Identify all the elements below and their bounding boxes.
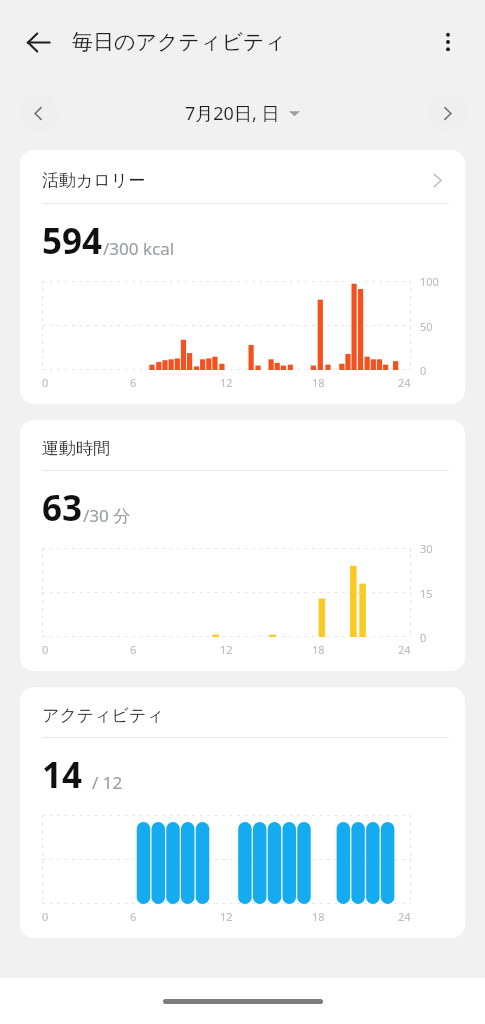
staticText: 0 (420, 630, 427, 645)
staticText: 18 (312, 909, 325, 924)
staticText: 15 (420, 586, 433, 601)
staticText: 活動カロリー (42, 170, 425, 191)
button[interactable]: 7月20日, 日 (179, 97, 306, 130)
staticText: 12 (220, 642, 233, 657)
staticText: 0 (42, 375, 49, 390)
staticText: 50 (420, 319, 433, 334)
staticText: 100 (420, 274, 439, 289)
staticText: 30 (420, 541, 433, 556)
button[interactable]: 運動時間 (20, 420, 465, 671)
staticText: 毎日のアクティビティ (72, 29, 286, 55)
button[interactable]: Previous day (18, 93, 58, 133)
staticText: / 12 (92, 771, 123, 794)
staticText: 0 (42, 909, 49, 924)
staticText: 63 (42, 484, 83, 532)
button[interactable]: Back (14, 18, 62, 66)
staticText: 18 (312, 375, 325, 390)
staticText: 14 (42, 751, 83, 799)
button[interactable]: Next day (427, 93, 467, 133)
staticText: /300 kcal (103, 237, 175, 260)
staticText: 24 (398, 642, 411, 657)
staticText: 6 (130, 642, 137, 657)
staticText: 0 (42, 642, 49, 657)
staticText: 12 (220, 909, 233, 924)
button[interactable]: アクティビティ (20, 687, 465, 938)
staticText: アクティビティ (42, 705, 449, 726)
staticText: 7月20日, 日 (185, 101, 280, 126)
staticText: 運動時間 (42, 438, 449, 459)
staticText: 0 (420, 363, 427, 378)
staticText: 24 (398, 375, 411, 390)
button[interactable]: Details (425, 168, 449, 192)
staticText: 24 (398, 909, 411, 924)
staticText: /30 分 (83, 504, 131, 527)
staticText: 18 (312, 642, 325, 657)
staticText: 6 (130, 909, 137, 924)
staticText: 594 (42, 217, 103, 265)
button[interactable]: More options (424, 18, 472, 66)
button[interactable]: 活動カロリー (20, 150, 465, 404)
staticText: 12 (220, 375, 233, 390)
staticText: 6 (130, 375, 137, 390)
